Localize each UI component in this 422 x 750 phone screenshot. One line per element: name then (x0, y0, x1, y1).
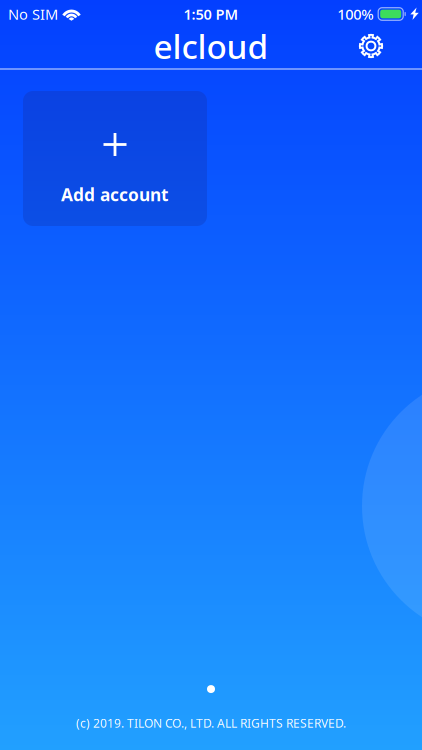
staticText: 100% (337, 4, 373, 24)
staticText: 1:50 PM (183, 4, 238, 24)
staticText: Add account (61, 183, 169, 206)
staticText: No SIM (8, 4, 58, 24)
button[interactable]: Settings (349, 24, 393, 68)
staticText: elcloud (153, 24, 268, 68)
staticText: (c) 2019. TILON CO., LTD. ALL RIGHTS RES… (76, 715, 346, 731)
button[interactable]: Add account (23, 91, 207, 226)
